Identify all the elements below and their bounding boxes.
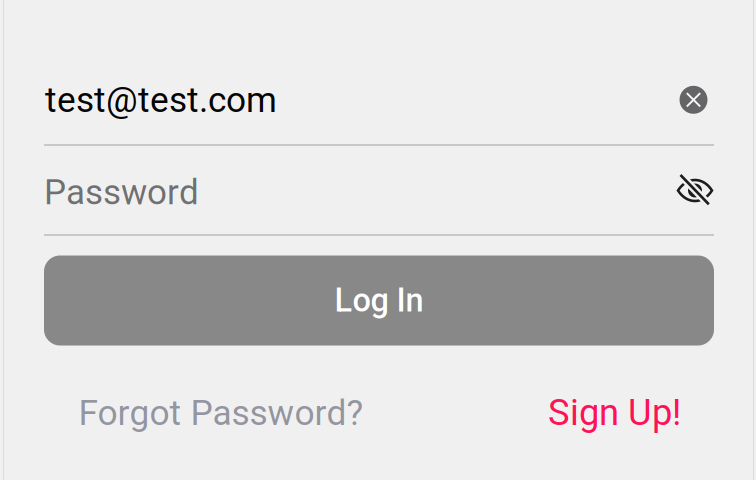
staticText: test@test.com	[45, 79, 277, 121]
button[interactable]: Forgot Password?	[78, 385, 368, 441]
staticText: Forgot Password?	[78, 392, 363, 434]
button[interactable]: Log In	[44, 255, 714, 345]
button[interactable]: Sign Up!	[541, 384, 681, 440]
button[interactable]: Show password	[669, 165, 721, 215]
staticText: Sign Up!	[548, 391, 681, 434]
staticText: Log In	[334, 281, 423, 319]
staticText: Password	[44, 172, 199, 213]
button[interactable]: Password	[44, 149, 714, 235]
button[interactable]: Clear text	[672, 79, 714, 121]
button[interactable]: test@test.com	[45, 67, 715, 132]
